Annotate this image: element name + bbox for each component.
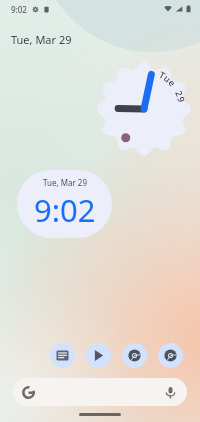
button[interactable]: Chrome Beta — [158, 343, 183, 368]
staticText: 9:02 — [34, 189, 96, 231]
staticText: e — [166, 76, 179, 89]
staticText: 9:02 — [11, 4, 27, 15]
staticText: 2 — [173, 88, 186, 98]
staticText: 9 — [175, 95, 188, 104]
staticText: u — [162, 71, 174, 85]
button[interactable]: Voice search — [164, 386, 177, 399]
button[interactable]: Tue, Mar 29 — [17, 170, 112, 238]
button[interactable]: Search — [13, 378, 187, 406]
staticText: Tue, Mar 29 — [43, 177, 88, 188]
button[interactable]: Chrome — [122, 343, 147, 368]
button[interactable]: Play Store — [86, 343, 111, 368]
button[interactable]: Analog clock widget — [96, 61, 192, 157]
staticText: T — [157, 68, 168, 81]
button[interactable]: Messages — [50, 343, 75, 368]
staticText: Tue, Mar 29 — [11, 32, 72, 47]
staticText — [171, 83, 183, 92]
button[interactable]: Tue, Mar 29 — [11, 32, 200, 47]
